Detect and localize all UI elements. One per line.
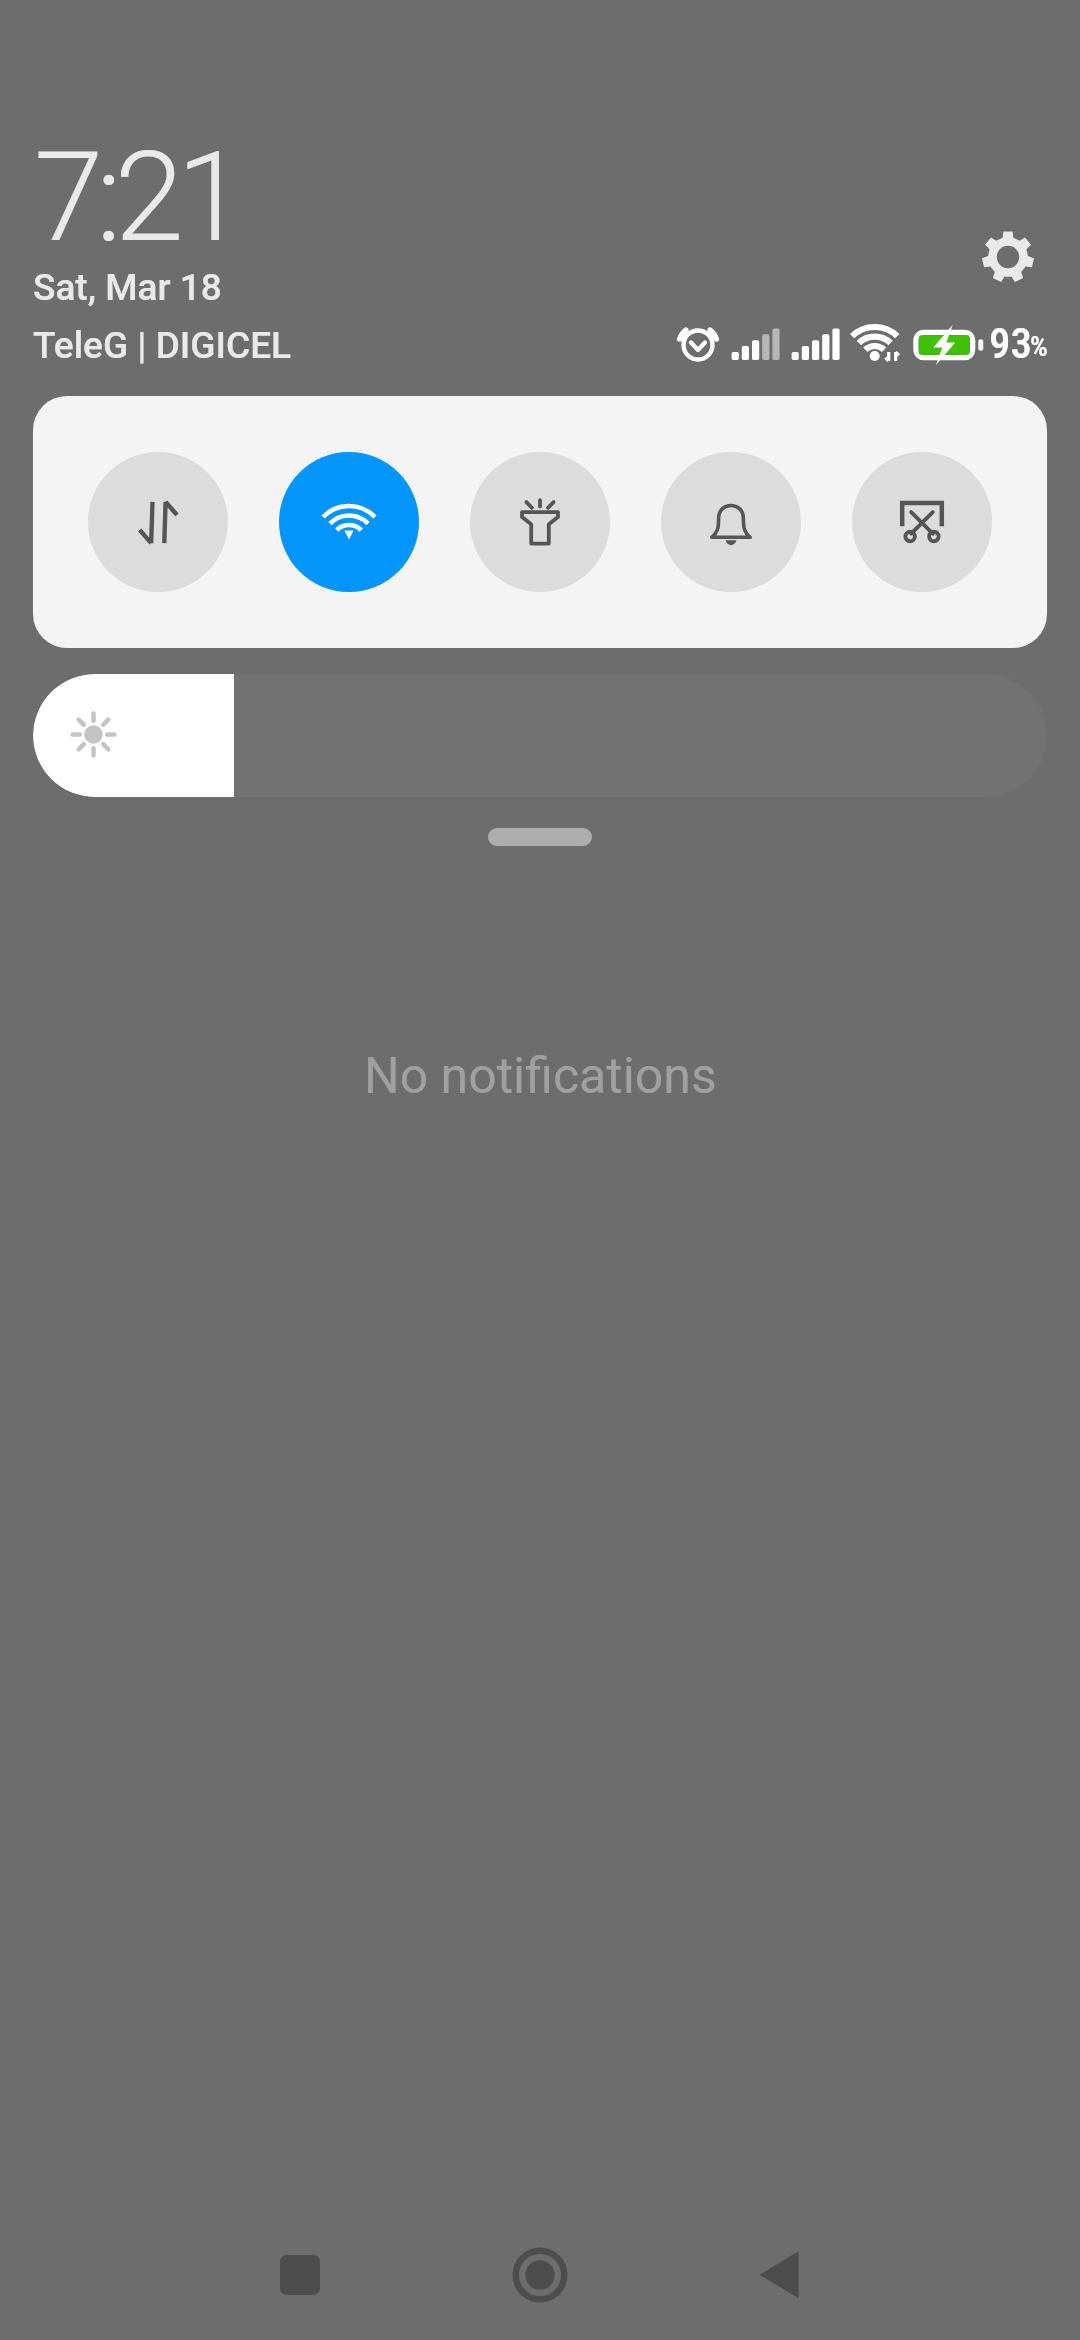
staticText: TeleG | DIGICEL bbox=[33, 324, 292, 367]
button[interactable]: Brightness bbox=[33, 674, 1047, 797]
button[interactable]: Wi-Fi bbox=[279, 452, 419, 592]
button[interactable]: Recents bbox=[255, 2230, 345, 2320]
button[interactable]: Back bbox=[735, 2230, 825, 2320]
staticText: No notifications bbox=[364, 1047, 717, 1106]
staticText: 93 bbox=[989, 318, 1032, 368]
button[interactable]: Flashlight bbox=[470, 452, 610, 592]
button[interactable]: Screenshot bbox=[852, 452, 992, 592]
staticText: Sat, Mar 18 bbox=[33, 266, 222, 309]
button[interactable]: Settings bbox=[963, 212, 1053, 302]
button[interactable]: Do not disturb bbox=[661, 452, 801, 592]
staticText: % bbox=[1030, 330, 1048, 363]
staticText: 7:21 bbox=[34, 124, 239, 270]
button[interactable]: Mobile data bbox=[88, 452, 228, 592]
button[interactable]: Home bbox=[495, 2230, 585, 2320]
